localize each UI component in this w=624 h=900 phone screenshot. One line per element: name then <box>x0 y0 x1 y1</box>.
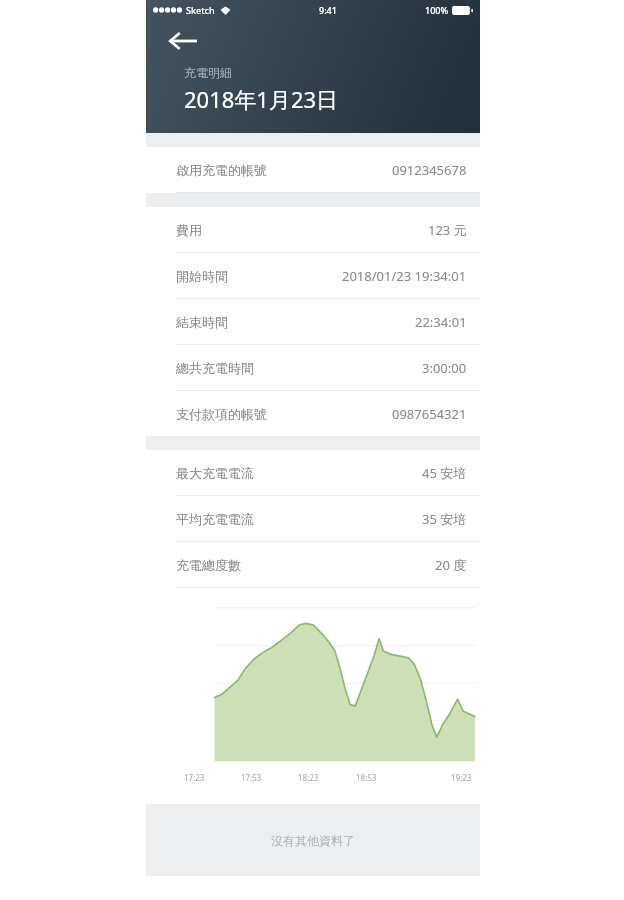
staticText: 2018年1月23日 <box>184 84 339 114</box>
button[interactable]: 充電總度數 <box>146 542 480 588</box>
staticText: 2018/01/23 19:34:01 <box>342 267 467 285</box>
staticText: 17:53 <box>241 772 262 783</box>
button[interactable]: 沒有其他資料了 <box>146 804 480 876</box>
button[interactable]: Back <box>166 23 202 59</box>
staticText: 22:34:01 <box>415 313 467 331</box>
button[interactable]: 費用 <box>146 207 480 253</box>
staticText: 19:23 <box>451 772 472 783</box>
button[interactable]: 結束時間 <box>146 299 480 345</box>
staticText: 0912345678 <box>392 161 467 179</box>
button[interactable]: 支付款項的帳號 <box>146 391 480 436</box>
staticText: 最大充電電流 <box>176 465 254 481</box>
staticText: 充電明細 <box>184 65 232 80</box>
staticText: 35 安培 <box>422 510 467 528</box>
button[interactable]: 啟用充電的帳號 <box>146 147 480 193</box>
staticText: 17:23 <box>184 772 205 783</box>
staticText: Sketch <box>186 4 215 16</box>
button[interactable]: 總共充電時間 <box>146 345 480 391</box>
staticText: 18:53 <box>356 772 377 783</box>
button[interactable]: 最大充電電流 <box>146 450 480 496</box>
staticText: 開始時間 <box>176 268 228 284</box>
staticText: 總共充電時間 <box>176 360 254 376</box>
staticText: 啟用充電的帳號 <box>176 162 267 178</box>
staticText: 支付款項的帳號 <box>176 406 267 422</box>
staticText: 費用 <box>176 222 202 238</box>
staticText: 20 度 <box>435 556 467 574</box>
staticText: 沒有其他資料了 <box>271 833 355 848</box>
button[interactable]: 平均充電電流 <box>146 496 480 542</box>
staticText: 100% <box>425 4 449 16</box>
staticText: 平均充電電流 <box>176 511 254 527</box>
staticText: 123 元 <box>428 221 467 239</box>
button[interactable]: 開始時間 <box>146 253 480 299</box>
staticText: 充電總度數 <box>176 557 241 573</box>
staticText: 45 安培 <box>422 464 467 482</box>
staticText: 0987654321 <box>392 405 467 423</box>
staticText: 9:41 <box>319 4 337 16</box>
staticText: 18:23 <box>298 772 319 783</box>
staticText: 結束時間 <box>176 314 228 330</box>
staticText: 3:00:00 <box>422 359 467 377</box>
